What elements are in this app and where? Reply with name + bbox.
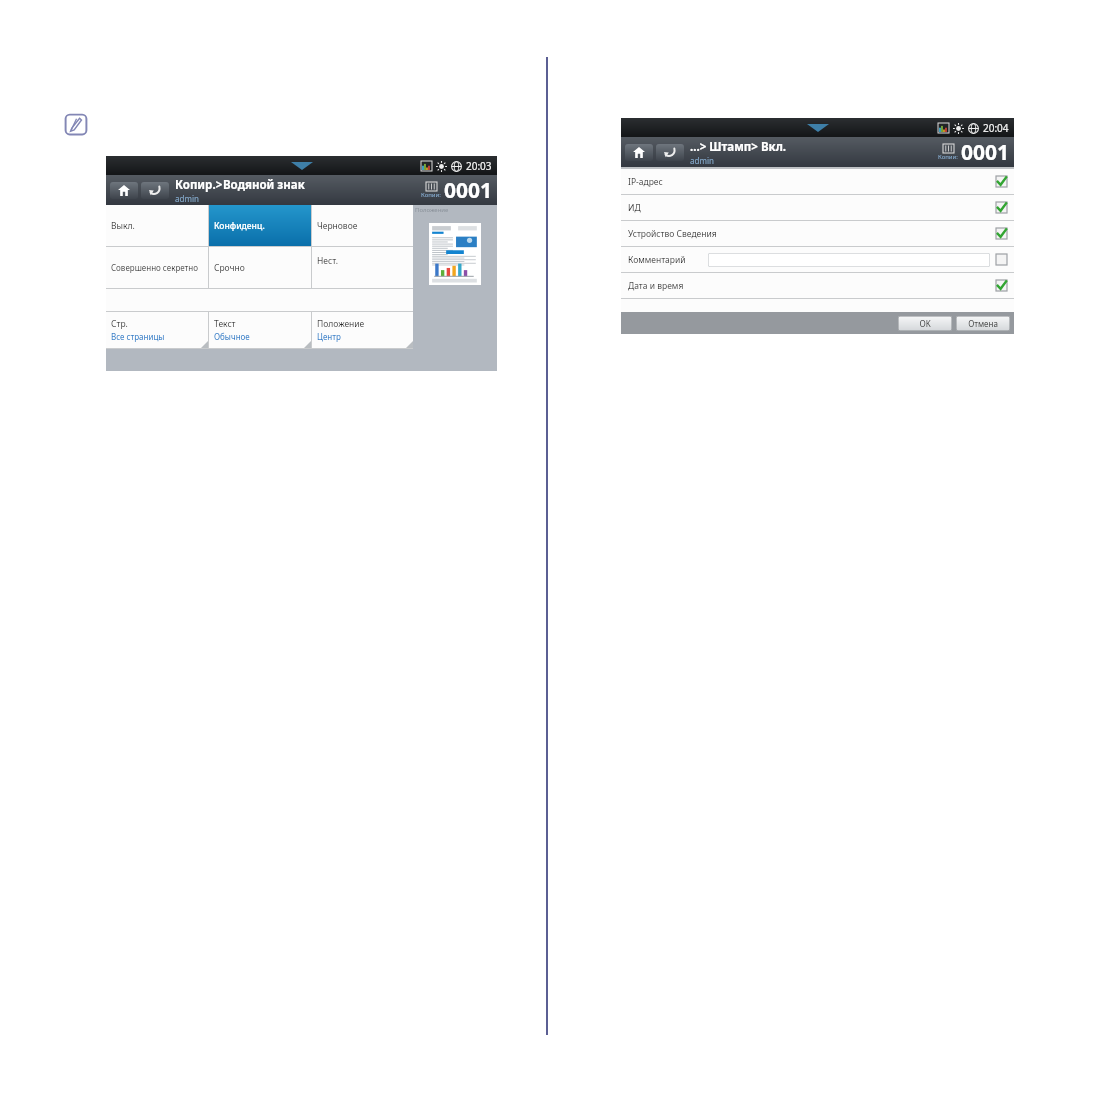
staticText: 0001 bbox=[961, 138, 1010, 167]
button[interactable]: Нест. bbox=[312, 247, 413, 288]
button[interactable]: Checked bbox=[996, 202, 1007, 213]
staticText: Стр. bbox=[111, 318, 128, 330]
staticText: Нест. bbox=[317, 255, 339, 267]
staticText: Текст bbox=[214, 318, 236, 330]
staticText: Черновое bbox=[317, 220, 358, 232]
staticText: 20:04 bbox=[983, 121, 1009, 135]
staticText: OK bbox=[919, 318, 931, 329]
button[interactable]: Стр. bbox=[106, 312, 208, 348]
button[interactable]: Unchecked bbox=[996, 254, 1007, 265]
staticText: Копии: bbox=[938, 153, 958, 161]
button[interactable]: Устройство Сведения bbox=[621, 221, 1014, 246]
staticText: Совершенно секретно bbox=[111, 262, 198, 273]
button[interactable]: Совершенно секретно bbox=[106, 247, 208, 288]
staticText: ...> Штамп> bbox=[690, 139, 761, 155]
button[interactable]: ИД bbox=[621, 195, 1014, 220]
staticText: Обычное bbox=[214, 331, 250, 342]
button[interactable]: Checked bbox=[996, 176, 1007, 187]
staticText: 20:03 bbox=[466, 159, 492, 173]
button[interactable]: Home bbox=[110, 182, 138, 199]
button[interactable]: Черновое bbox=[312, 205, 413, 246]
staticText: Вкл. bbox=[761, 139, 787, 155]
button[interactable]: Дата и время bbox=[621, 273, 1014, 298]
staticText: ИД bbox=[628, 202, 641, 214]
button[interactable]: Checked bbox=[996, 280, 1007, 291]
staticText: Все страницы bbox=[111, 331, 165, 342]
button[interactable]: Back bbox=[141, 182, 169, 199]
staticText: Центр bbox=[317, 331, 341, 342]
staticText: Положение bbox=[317, 318, 365, 330]
button[interactable] bbox=[708, 253, 990, 267]
staticText: Отмена bbox=[968, 318, 998, 329]
staticText: Положение bbox=[415, 206, 449, 214]
staticText: Выкл. bbox=[111, 220, 135, 232]
button[interactable]: Положение bbox=[312, 312, 413, 348]
staticText: Копии: bbox=[421, 191, 441, 199]
staticText: 0001 bbox=[444, 176, 493, 205]
button[interactable]: Checked bbox=[996, 228, 1007, 239]
button[interactable]: Выкл. bbox=[106, 205, 208, 246]
button[interactable]: OK bbox=[898, 316, 952, 331]
staticText: admin bbox=[690, 155, 714, 166]
staticText: admin bbox=[175, 193, 199, 204]
staticText: Срочно bbox=[214, 262, 245, 274]
staticText: Комментарий bbox=[628, 254, 686, 266]
staticText: Водяной знак bbox=[223, 177, 305, 193]
button[interactable]: Комментарий bbox=[621, 247, 1014, 272]
button[interactable]: Back bbox=[656, 144, 684, 161]
staticText: Конфиденц. bbox=[214, 220, 265, 232]
staticText: Копир.> bbox=[175, 177, 223, 193]
button[interactable]: Конфиденц. bbox=[209, 205, 311, 246]
button[interactable]: Home bbox=[625, 144, 653, 161]
button[interactable]: Срочно bbox=[209, 247, 311, 288]
button[interactable]: Отмена bbox=[956, 316, 1010, 331]
staticText: IP-адрес bbox=[628, 176, 663, 188]
staticText: Устройство Сведения bbox=[628, 228, 717, 240]
button[interactable]: Текст bbox=[209, 312, 311, 348]
staticText: Дата и время bbox=[628, 280, 684, 292]
button[interactable]: IP-адрес bbox=[621, 169, 1014, 194]
